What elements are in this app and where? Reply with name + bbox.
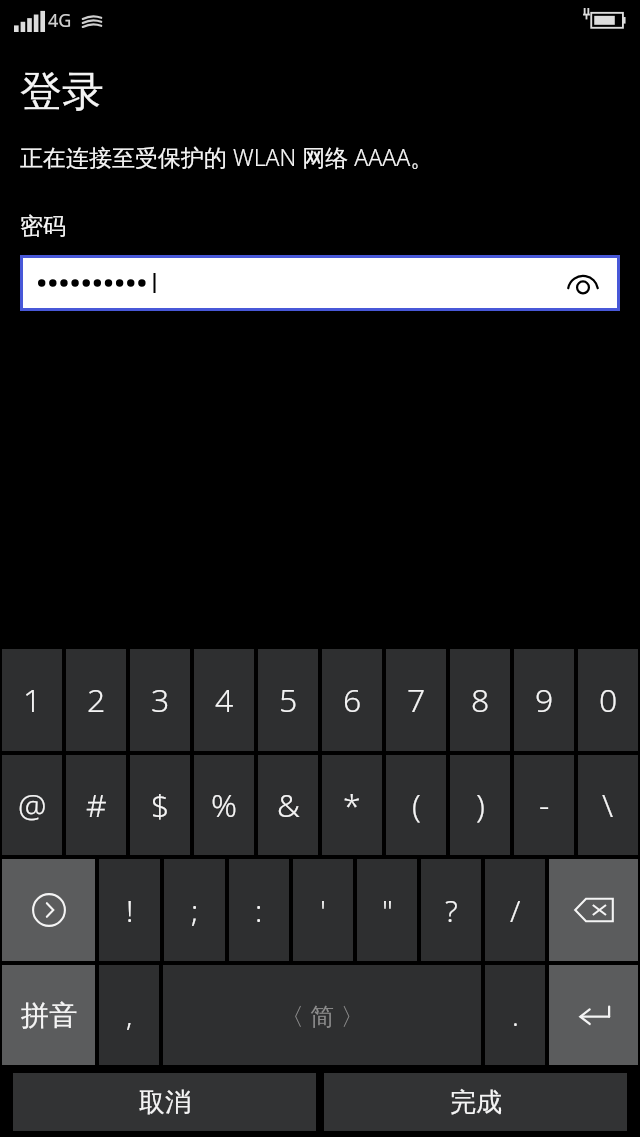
button[interactable]: ,: [99, 965, 159, 1065]
button[interactable]: 0: [578, 649, 638, 751]
button[interactable]: Enter: [549, 965, 638, 1065]
staticText: 4: [215, 678, 234, 722]
button[interactable]: \: [578, 755, 638, 855]
button[interactable]: ;: [164, 859, 225, 961]
staticText: ': [320, 890, 326, 931]
button[interactable]: 4: [194, 649, 254, 751]
button[interactable]: 5: [258, 649, 318, 751]
staticText: /: [510, 890, 521, 931]
staticText: 5: [279, 678, 298, 722]
button[interactable]: Space: [163, 965, 481, 1065]
button[interactable]: 9: [514, 649, 574, 751]
button[interactable]: !: [99, 859, 160, 961]
staticText: 1: [23, 678, 42, 722]
button[interactable]: Show password: [23, 258, 617, 308]
button[interactable]: 3: [130, 649, 190, 751]
staticText: 登录: [20, 66, 104, 119]
staticText: :: [255, 890, 263, 931]
button[interactable]: Next: [2, 859, 95, 961]
staticText: 4G: [48, 8, 72, 33]
staticText: ): [476, 783, 485, 827]
staticText: 〈 简 〉: [280, 999, 365, 1032]
button[interactable]: -: [514, 755, 574, 855]
staticText: 7: [407, 678, 426, 722]
staticText: 拼音: [21, 998, 77, 1033]
staticText: ?: [445, 890, 458, 931]
staticText: (: [412, 783, 421, 827]
staticText: ,: [126, 996, 133, 1034]
staticText: #: [86, 783, 107, 827]
button[interactable]: ': [293, 859, 353, 961]
button[interactable]: %: [194, 755, 254, 855]
button[interactable]: 拼音: [2, 965, 95, 1065]
staticText: $: [151, 783, 170, 827]
staticText: *: [343, 783, 361, 827]
staticText: -: [539, 783, 550, 827]
staticText: 正在连接至受保护的 WLAN 网络 AAAA。: [20, 141, 434, 172]
button[interactable]: 7: [386, 649, 446, 751]
button[interactable]: @: [2, 755, 62, 855]
button[interactable]: 8: [450, 649, 510, 751]
button[interactable]: .: [485, 965, 545, 1065]
button[interactable]: /: [485, 859, 545, 961]
staticText: %: [211, 783, 237, 827]
staticText: !: [126, 890, 134, 931]
button[interactable]: 完成: [324, 1073, 627, 1131]
staticText: .: [512, 996, 519, 1034]
button[interactable]: 2: [66, 649, 126, 751]
button[interactable]: $: [130, 755, 190, 855]
button[interactable]: ": [357, 859, 417, 961]
button[interactable]: *: [322, 755, 382, 855]
staticText: 取消: [139, 1086, 191, 1119]
staticText: ;: [191, 890, 199, 931]
staticText: @: [18, 783, 47, 827]
button[interactable]: (: [386, 755, 446, 855]
button[interactable]: Show password: [563, 263, 603, 303]
button[interactable]: ?: [421, 859, 481, 961]
button[interactable]: :: [229, 859, 289, 961]
button[interactable]: 6: [322, 649, 382, 751]
button[interactable]: &: [258, 755, 318, 855]
button[interactable]: 1: [2, 649, 62, 751]
staticText: 完成: [450, 1086, 502, 1119]
staticText: ": [382, 890, 393, 931]
staticText: 0: [599, 678, 618, 722]
staticText: 8: [471, 678, 490, 722]
button[interactable]: Backspace: [549, 859, 638, 961]
button[interactable]: #: [66, 755, 126, 855]
staticText: 9: [535, 678, 554, 722]
staticText: 密码: [20, 212, 66, 241]
staticText: \: [602, 783, 614, 827]
staticText: 3: [151, 678, 170, 722]
staticText: 6: [343, 678, 362, 722]
staticText: &: [277, 783, 300, 827]
button[interactable]: ): [450, 755, 510, 855]
staticText: 2: [87, 678, 106, 722]
button[interactable]: 取消: [13, 1073, 316, 1131]
